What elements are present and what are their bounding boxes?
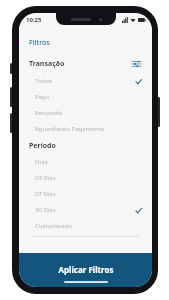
staticText: 07 Dias bbox=[35, 190, 56, 198]
button[interactable]: Pago bbox=[19, 89, 152, 105]
button[interactable]: Filtros bbox=[19, 36, 152, 50]
button[interactable]: Hoje bbox=[19, 154, 152, 170]
button[interactable]: Aguardando Pagamento bbox=[19, 121, 152, 137]
button[interactable]: 30 Dias bbox=[19, 202, 152, 218]
button[interactable]: Customizado bbox=[19, 218, 152, 234]
button[interactable]: 07 Dias bbox=[19, 186, 152, 202]
staticText: Customizado bbox=[35, 222, 72, 230]
staticText: Transação bbox=[29, 59, 65, 69]
button[interactable]: Recusado bbox=[19, 105, 152, 121]
staticText: Aguardando Pagamento bbox=[35, 125, 105, 133]
staticText: Hoje bbox=[35, 158, 49, 166]
staticText: Todos bbox=[35, 77, 52, 85]
staticText: Aplicar Filtros bbox=[58, 264, 114, 275]
staticText: Recusado bbox=[35, 109, 63, 117]
staticText: Período bbox=[29, 141, 56, 151]
staticText: 03 Dias bbox=[35, 174, 56, 182]
button[interactable]: Aplicar Filtros bbox=[19, 253, 152, 287]
button[interactable]: Todos bbox=[19, 73, 152, 89]
staticText: 10:25 bbox=[26, 16, 42, 24]
staticText: 30 Dias bbox=[35, 206, 56, 214]
button[interactable]: 03 Dias bbox=[19, 170, 152, 186]
staticText: Filtros bbox=[29, 38, 50, 48]
button[interactable]: Ordenar bbox=[130, 58, 142, 70]
staticText: Pago bbox=[35, 93, 50, 101]
